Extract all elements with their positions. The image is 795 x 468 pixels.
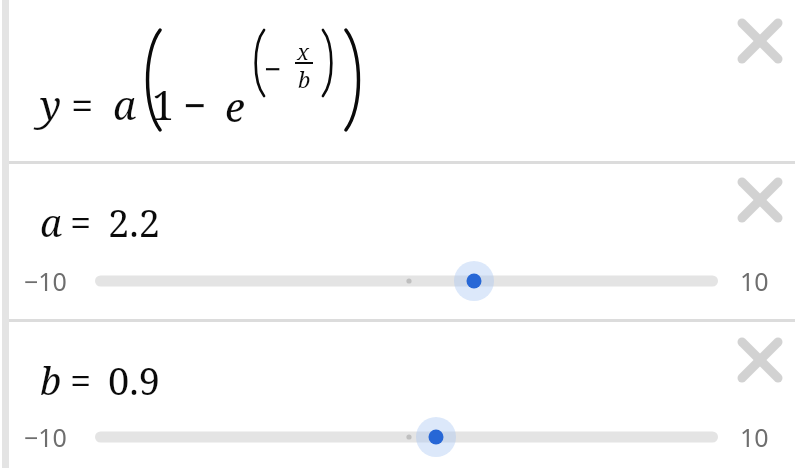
staticText: a: [40, 196, 63, 248]
staticText: 2.2: [108, 196, 160, 248]
staticText: −10: [24, 420, 67, 454]
button[interactable]: Delete: [732, 332, 788, 388]
staticText: b: [40, 354, 62, 406]
button[interactable]: [9, 322, 795, 468]
button[interactable]: Delete: [732, 13, 788, 69]
staticText: 0.9: [108, 354, 160, 406]
button[interactable]: [9, 164, 795, 320]
staticText: y: [40, 77, 62, 131]
staticText: a: [113, 77, 137, 131]
button[interactable]: Slider: [89, 413, 724, 461]
staticText: −: [264, 48, 282, 89]
button[interactable]: Slider: [89, 257, 724, 305]
staticText: −: [183, 77, 207, 131]
staticText: x: [297, 36, 310, 66]
staticText: 10: [740, 264, 769, 298]
staticText: 1: [152, 77, 175, 131]
staticText: =: [71, 77, 94, 131]
staticText: e: [225, 79, 245, 133]
staticText: =: [70, 196, 92, 248]
staticText: b: [298, 64, 311, 94]
staticText: −10: [24, 264, 67, 298]
button[interactable]: Delete: [732, 172, 788, 228]
staticText: 10: [740, 420, 769, 454]
staticText: =: [70, 354, 92, 406]
button[interactable]: y: [9, 0, 795, 162]
